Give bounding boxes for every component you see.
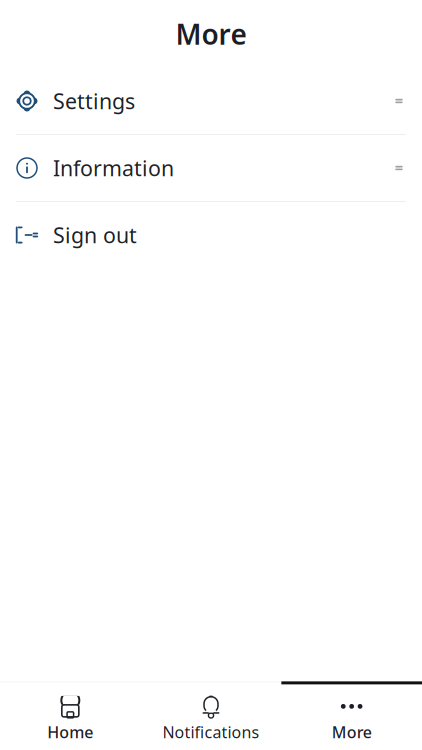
button[interactable]: More — [281, 682, 422, 750]
staticText: Settings — [53, 87, 135, 115]
staticText: Notifications — [162, 721, 259, 743]
button[interactable]: Notifications — [141, 682, 281, 750]
button[interactable]: Home — [0, 682, 141, 750]
button[interactable]: Settings — [0, 68, 422, 134]
staticText: Sign out — [53, 221, 137, 249]
staticText: More — [175, 15, 246, 53]
button[interactable]: Information — [0, 135, 422, 201]
staticText: Information — [53, 154, 174, 182]
staticText: Home — [47, 721, 93, 743]
button[interactable]: Sign out — [0, 202, 422, 268]
staticText: More — [332, 721, 372, 743]
